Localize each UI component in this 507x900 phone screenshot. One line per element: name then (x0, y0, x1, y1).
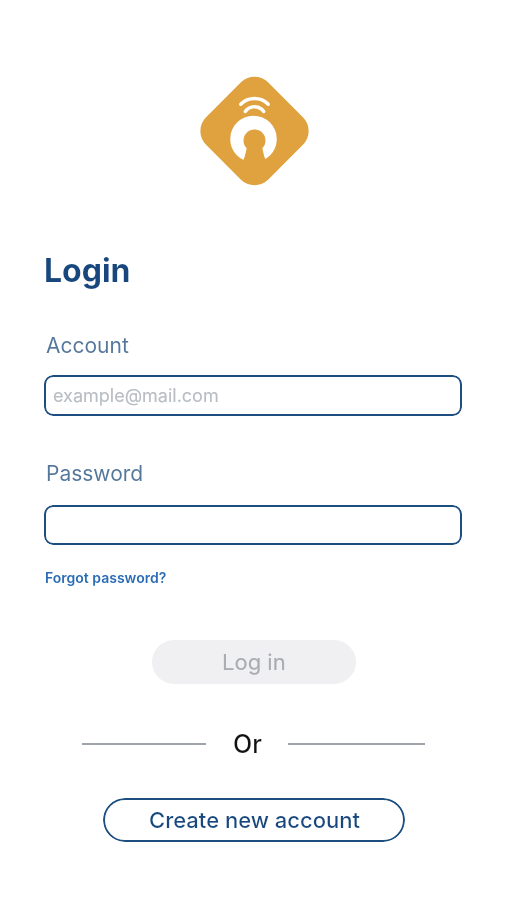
staticText: Forgot password? (45, 569, 167, 586)
button[interactable]: Log in (152, 640, 356, 684)
staticText: Login (44, 251, 131, 290)
staticText: Create new account (149, 807, 360, 834)
staticText: Or (233, 729, 262, 759)
button[interactable] (53, 505, 462, 545)
button[interactable]: example@mail.com (53, 375, 462, 416)
button[interactable]: Forgot password? (45, 569, 167, 586)
staticText: Log in (222, 649, 286, 676)
button[interactable]: Create new account (103, 798, 405, 842)
staticText: Password (46, 461, 144, 486)
staticText: example@mail.com (53, 385, 219, 407)
staticText: Account (46, 333, 129, 358)
